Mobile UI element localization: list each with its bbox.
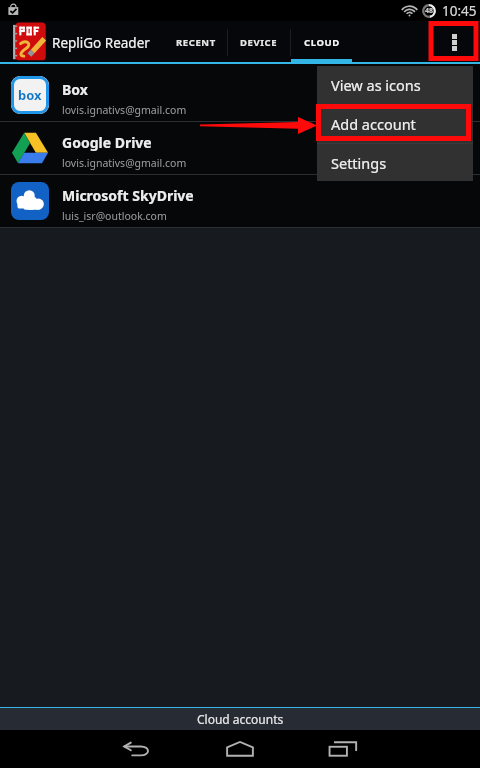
staticText: Add account bbox=[331, 114, 416, 134]
staticText: RepliGo Reader bbox=[52, 34, 150, 52]
button[interactable]: Home bbox=[218, 730, 262, 768]
staticText: 10:45 bbox=[442, 2, 477, 20]
staticText: luis_isr@outlook.com bbox=[62, 209, 167, 223]
button[interactable]: Recents bbox=[321, 730, 365, 768]
button[interactable]: Add account bbox=[317, 105, 473, 143]
staticText: Cloud accounts bbox=[197, 711, 284, 727]
staticText: DEVICE bbox=[240, 36, 278, 49]
staticText: lovis.ignativs@gmail.com bbox=[62, 103, 187, 117]
staticText: lovis.ignativs@gmail.com bbox=[62, 156, 187, 170]
button[interactable]: RECENT bbox=[165, 21, 227, 64]
button[interactable]: Back bbox=[115, 730, 159, 768]
button[interactable]: Microsoft SkyDrive bbox=[0, 175, 480, 227]
button[interactable]: Settings bbox=[317, 144, 473, 181]
staticText: Settings bbox=[331, 153, 387, 173]
staticText: Google Drive bbox=[62, 133, 152, 152]
button[interactable]: More options bbox=[430, 21, 478, 64]
staticText: CLOUD bbox=[304, 36, 340, 49]
staticText: Microsoft SkyDrive bbox=[62, 186, 194, 205]
button[interactable]: CLOUD bbox=[291, 21, 352, 64]
staticText: box bbox=[18, 86, 42, 104]
staticText: RECENT bbox=[176, 36, 216, 49]
button[interactable]: View as icons bbox=[317, 66, 473, 104]
button[interactable]: box bbox=[0, 69, 480, 121]
staticText: View as icons bbox=[331, 75, 421, 95]
button[interactable]: Google Drive bbox=[0, 122, 480, 174]
staticText: Box bbox=[62, 80, 88, 99]
button[interactable]: DEVICE bbox=[228, 21, 290, 64]
staticText: 48 bbox=[425, 6, 434, 16]
